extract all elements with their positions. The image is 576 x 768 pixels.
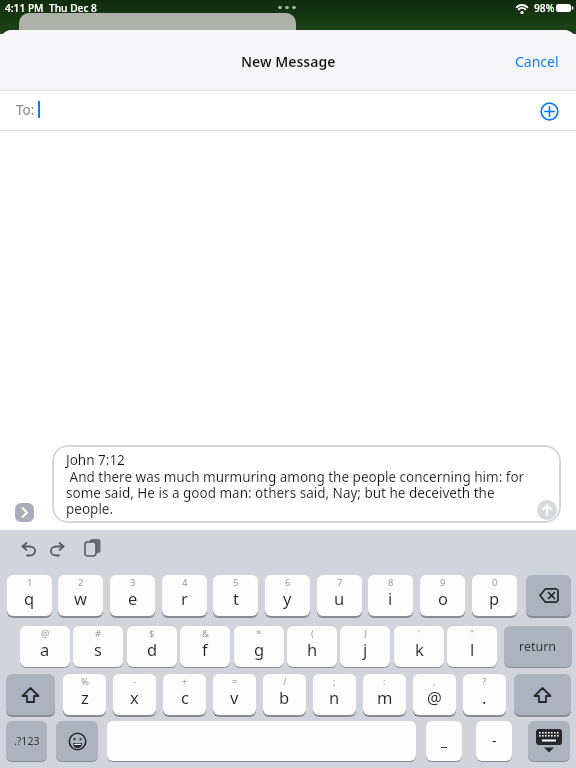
button[interactable]: ;: [313, 674, 356, 715]
button[interactable]: [15, 503, 34, 522]
staticText: (: [311, 627, 314, 640]
button[interactable]: [20, 543, 36, 556]
staticText: b: [279, 686, 290, 708]
button[interactable]: ': [394, 626, 444, 667]
staticText: #: [95, 627, 102, 640]
staticText: _: [441, 731, 448, 750]
staticText: 6: [285, 576, 291, 589]
staticText: 3: [130, 576, 136, 589]
staticText: &: [202, 627, 209, 640]
staticText: k: [415, 638, 424, 660]
staticText: Cancel: [515, 52, 559, 71]
staticText: 1: [27, 576, 33, 589]
staticText: p: [489, 587, 500, 609]
button[interactable]: *: [234, 626, 284, 667]
button[interactable]: @: [20, 626, 70, 667]
staticText: ": [470, 627, 474, 640]
button[interactable]: [50, 543, 66, 556]
button[interactable]: :: [363, 674, 406, 715]
button[interactable]: 2: [58, 575, 103, 616]
staticText: =: [232, 675, 238, 688]
staticText: *: [256, 627, 262, 640]
button[interactable]: 3: [110, 575, 155, 616]
button[interactable]: (: [287, 626, 337, 667]
staticText: ?: [482, 675, 487, 688]
button[interactable]: ,: [413, 674, 456, 715]
button[interactable]: return: [504, 626, 572, 667]
button[interactable]: [514, 674, 571, 715]
staticText: 4:11 PM: [5, 1, 44, 15]
staticText: To:: [16, 101, 35, 119]
staticText: y: [283, 587, 292, 609]
staticText: $: [149, 627, 155, 640]
staticText: g: [254, 638, 265, 660]
button[interactable]: ": [447, 626, 497, 667]
button[interactable]: [540, 102, 559, 121]
staticText: ,: [433, 675, 436, 688]
button[interactable]: John 7:12 And there was much murmuring a…: [52, 445, 561, 523]
staticText: .: [482, 686, 487, 708]
staticText: v: [230, 686, 239, 708]
button[interactable]: %: [63, 674, 106, 715]
staticText: @: [41, 627, 50, 640]
button[interactable]: _: [426, 721, 462, 761]
button[interactable]: [528, 721, 570, 761]
button[interactable]: Cancel: [515, 52, 559, 71]
staticText: w: [74, 587, 87, 609]
button[interactable]: 5: [213, 575, 258, 616]
button[interactable]: 8: [368, 575, 413, 616]
staticText: 5: [233, 576, 239, 589]
staticText: 9: [440, 576, 446, 589]
staticText: @: [427, 686, 442, 708]
staticText: 2: [78, 576, 84, 589]
staticText: .?123: [14, 734, 40, 748]
button[interactable]: 1: [7, 575, 52, 616]
staticText: e: [128, 587, 138, 609]
staticText: h: [307, 638, 318, 660]
button[interactable]: /: [263, 674, 306, 715]
button[interactable]: =: [213, 674, 256, 715]
button[interactable]: 0: [472, 575, 517, 616]
staticText: /: [283, 675, 287, 688]
staticText: ): [364, 627, 367, 640]
staticText: John 7:12 And there was much murmuring a…: [66, 451, 525, 518]
button[interactable]: -: [113, 674, 156, 715]
staticText: 0: [492, 576, 498, 589]
staticText: 8: [388, 576, 394, 589]
staticText: -: [492, 731, 497, 750]
button[interactable]: [56, 721, 98, 761]
staticText: s: [94, 638, 102, 660]
staticText: %: [81, 675, 89, 688]
staticText: u: [334, 587, 345, 609]
button[interactable]: [107, 721, 416, 761]
staticText: o: [438, 587, 448, 609]
button[interactable]: 6: [265, 575, 310, 616]
button[interactable]: ): [340, 626, 390, 667]
button[interactable]: [6, 674, 55, 715]
button[interactable]: 4: [162, 575, 207, 616]
staticText: q: [24, 587, 35, 609]
button[interactable]: &: [180, 626, 230, 667]
button[interactable]: $: [127, 626, 177, 667]
button[interactable]: +: [163, 674, 206, 715]
button[interactable]: ?: [463, 674, 506, 715]
staticText: l: [470, 638, 475, 660]
staticText: Thu Dec 8: [49, 1, 97, 15]
staticText: 4: [182, 576, 188, 589]
button[interactable]: 7: [317, 575, 362, 616]
button[interactable]: [84, 539, 102, 557]
button[interactable]: -: [476, 721, 512, 761]
button[interactable]: [526, 575, 571, 616]
button[interactable]: 9: [420, 575, 465, 616]
button[interactable]: #: [73, 626, 123, 667]
staticText: t: [233, 587, 239, 609]
staticText: c: [181, 686, 189, 708]
staticText: f: [202, 638, 208, 660]
button[interactable]: .?123: [6, 721, 47, 761]
button[interactable]: [537, 500, 557, 520]
staticText: 7: [337, 576, 343, 589]
staticText: +: [182, 675, 188, 688]
staticText: m: [377, 686, 393, 708]
staticText: New Message: [241, 52, 336, 71]
staticText: 98%: [534, 1, 555, 15]
